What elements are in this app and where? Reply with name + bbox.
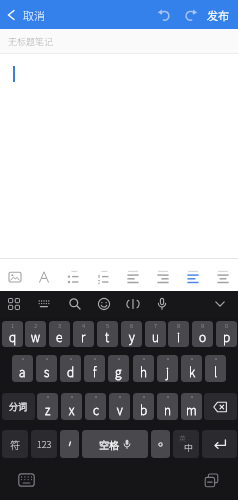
- button[interactable]: 分词: [2, 393, 35, 420]
- staticText: 123: [37, 438, 52, 451]
- button[interactable]: 符: [2, 430, 28, 458]
- staticText: n: [164, 401, 171, 418]
- staticText: a: [19, 363, 26, 380]
- staticText: g: [115, 363, 122, 380]
- button[interactable]: d: [60, 355, 81, 382]
- staticText: 英: [179, 433, 186, 443]
- button[interactable]: c: [85, 393, 106, 420]
- button[interactable]: [208, 259, 238, 291]
- staticText: 分词: [9, 400, 28, 413]
- button[interactable]: 无标题笔记: [0, 29, 238, 54]
- button[interactable]: 6: [121, 321, 142, 347]
- button[interactable]: [64, 293, 86, 315]
- button[interactable]: [178, 259, 208, 291]
- button[interactable]: b: [133, 393, 154, 420]
- button[interactable]: k: [181, 355, 202, 382]
- button[interactable]: 3: [49, 321, 70, 347]
- staticText: u: [152, 328, 159, 345]
- button[interactable]: [202, 430, 237, 458]
- staticText: l: [214, 363, 218, 380]
- button[interactable]: 2: [25, 321, 46, 347]
- staticText: p: [223, 328, 231, 345]
- staticText: 3: [58, 321, 62, 330]
- staticText: 9: [201, 321, 205, 330]
- button[interactable]: [29, 259, 58, 291]
- button[interactable]: [151, 293, 173, 315]
- staticText: r: [81, 328, 86, 345]
- button[interactable]: n: [157, 393, 178, 420]
- staticText: 7: [154, 321, 158, 330]
- button[interactable]: [151, 430, 170, 458]
- button[interactable]: s: [36, 355, 57, 382]
- button[interactable]: 123: [31, 430, 57, 458]
- staticText: q: [9, 328, 17, 345]
- button[interactable]: 9: [192, 321, 213, 347]
- staticText: 2: [34, 321, 38, 330]
- button[interactable]: g: [108, 355, 129, 382]
- button[interactable]: [204, 393, 237, 420]
- button[interactable]: [58, 259, 88, 291]
- button[interactable]: 英: [173, 430, 199, 458]
- button[interactable]: 4: [73, 321, 94, 347]
- button[interactable]: [0, 259, 29, 291]
- button[interactable]: [33, 293, 55, 315]
- button[interactable]: a: [12, 355, 33, 382]
- button[interactable]: x: [61, 393, 82, 420]
- staticText: 发布: [207, 7, 229, 23]
- staticText: i: [177, 328, 180, 345]
- staticText: 6: [130, 321, 134, 330]
- button[interactable]: [122, 293, 144, 315]
- staticText: 1: [11, 321, 15, 330]
- staticText: 空格: [99, 437, 119, 451]
- staticText: o: [199, 328, 207, 345]
- button[interactable]: 8: [168, 321, 189, 347]
- button[interactable]: m: [181, 393, 202, 420]
- button[interactable]: [93, 293, 115, 315]
- button[interactable]: l: [205, 355, 226, 382]
- button[interactable]: v: [109, 393, 130, 420]
- button[interactable]: h: [133, 355, 154, 382]
- button[interactable]: 1: [2, 321, 23, 347]
- button[interactable]: [148, 259, 178, 291]
- staticText: 中: [184, 441, 194, 454]
- button[interactable]: z: [37, 393, 58, 420]
- staticText: y: [129, 328, 135, 345]
- staticText: j: [166, 363, 169, 380]
- button[interactable]: f: [84, 355, 105, 382]
- staticText: t: [105, 328, 110, 345]
- staticText: 4: [82, 321, 86, 330]
- staticText: d: [67, 363, 75, 380]
- staticText: x: [69, 401, 75, 418]
- staticText: 无标题笔记: [8, 35, 54, 48]
- button[interactable]: 空格: [82, 430, 148, 458]
- staticText: 5: [106, 321, 110, 330]
- button[interactable]: 7: [145, 321, 166, 347]
- staticText: z: [45, 401, 51, 418]
- button[interactable]: [3, 293, 25, 315]
- button[interactable]: 0: [216, 321, 237, 347]
- staticText: e: [56, 328, 63, 345]
- button[interactable]: [209, 293, 231, 315]
- button[interactable]: [178, 0, 202, 29]
- button[interactable]: [118, 259, 148, 291]
- staticText: s: [44, 363, 50, 380]
- button[interactable]: 取消: [0, 0, 45, 29]
- button[interactable]: [88, 259, 118, 291]
- button[interactable]: [199, 468, 224, 492]
- staticText: f: [93, 363, 97, 380]
- staticText: v: [117, 401, 123, 418]
- button[interactable]: j: [157, 355, 178, 382]
- staticText: b: [140, 401, 148, 418]
- staticText: k: [189, 363, 195, 380]
- button[interactable]: [14, 468, 39, 492]
- staticText: h: [140, 363, 147, 380]
- button[interactable]: [60, 430, 79, 458]
- staticText: 符: [10, 437, 20, 451]
- staticText: m: [186, 401, 197, 418]
- staticText: c: [93, 401, 99, 418]
- staticText: 0: [225, 321, 229, 330]
- button[interactable]: [152, 0, 176, 29]
- staticText: w: [31, 328, 40, 345]
- button[interactable]: 5: [97, 321, 118, 347]
- button[interactable]: 发布: [202, 0, 238, 29]
